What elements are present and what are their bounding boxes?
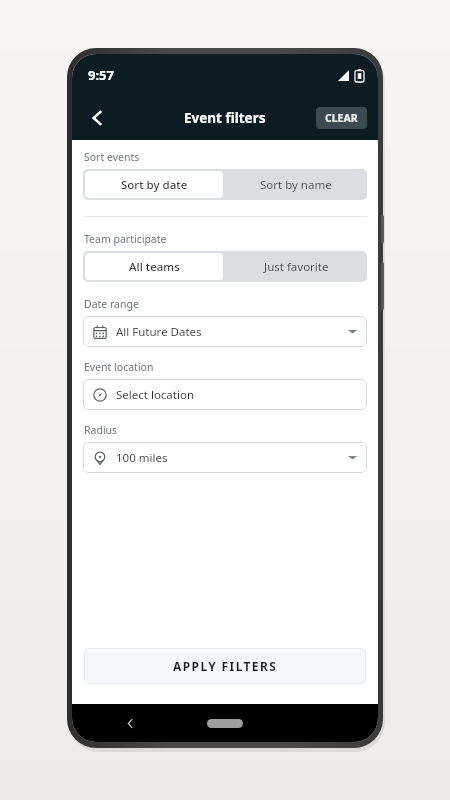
staticText: APPLY FILTERS [173,658,278,674]
button[interactable]: APPLY FILTERS [84,648,366,684]
staticText: Just favorite [264,259,329,275]
staticText: Select location [116,387,194,403]
button[interactable]: Just favorite [225,251,367,282]
button[interactable]: Select location [83,379,367,410]
staticText: Event filters [184,109,266,127]
staticText: Sort by date [121,177,188,193]
button[interactable]: CLEAR [316,107,367,129]
staticText: 100 miles [116,450,168,466]
staticText: Event location [84,360,154,374]
staticText: Date range [84,297,139,311]
staticText: Radius [84,423,118,437]
staticText: All Future Dates [116,324,202,340]
staticText: CLEAR [325,111,358,125]
button[interactable]: Back [78,98,118,138]
button[interactable]: Home [207,719,243,728]
staticText: Sort by name [260,177,332,193]
button[interactable]: Sort by name [225,169,367,200]
button[interactable]: All teams [85,253,223,280]
staticText: Team participate [84,232,167,246]
button[interactable]: Sort by date [85,171,223,198]
staticText: Sort events [84,150,140,164]
button[interactable]: Back [117,710,143,736]
staticText: 9:57 [88,66,114,84]
button[interactable]: All Future Dates [83,316,367,347]
button[interactable]: 100 miles [83,442,367,473]
staticText: All teams [129,259,180,275]
